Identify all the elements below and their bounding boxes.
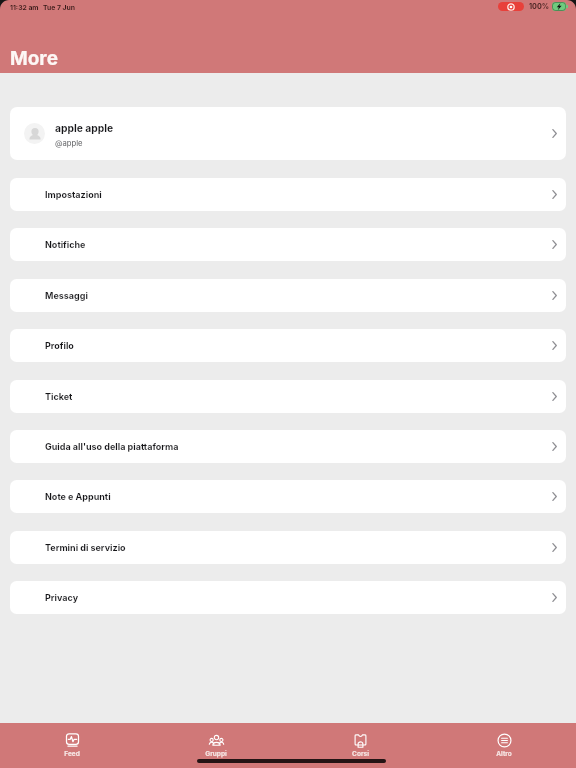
- staticText: Profilo: [45, 340, 74, 351]
- staticText: Gruppi: [205, 750, 227, 758]
- button[interactable]: Privacy: [10, 581, 566, 614]
- staticText: Feed: [64, 750, 80, 758]
- button[interactable]: Note e Appunti: [10, 480, 566, 513]
- button[interactable]: Profilo: [10, 329, 566, 362]
- button[interactable]: Termini di servizio: [10, 531, 566, 564]
- button[interactable]: Messaggi: [10, 279, 566, 312]
- staticText: 11:32 am: [10, 3, 39, 11]
- staticText: Notifiche: [45, 239, 86, 250]
- staticText: Impostazioni: [45, 189, 102, 200]
- staticText: Termini di servizio: [45, 542, 126, 553]
- staticText: Altro: [496, 750, 512, 758]
- button[interactable]: Feed: [0, 723, 144, 768]
- staticText: Privacy: [45, 592, 79, 603]
- button[interactable]: Guida all'uso della piattaforma: [10, 430, 566, 463]
- staticText: Tue 7 Jun: [43, 3, 75, 11]
- button[interactable]: Gruppi: [144, 723, 288, 768]
- staticText: Guida all'uso della piattaforma: [45, 441, 179, 452]
- staticText: 100%: [529, 2, 550, 11]
- button[interactable]: Ticket: [10, 380, 566, 413]
- button[interactable]: Corsi: [288, 723, 432, 768]
- staticText: apple apple: [55, 122, 114, 134]
- staticText: Corsi: [352, 750, 369, 758]
- staticText: Messaggi: [45, 290, 88, 301]
- staticText: More: [10, 47, 58, 70]
- staticText: @apple: [55, 139, 83, 148]
- staticText: Note e Appunti: [45, 491, 111, 502]
- button[interactable]: Altro: [432, 723, 576, 768]
- button[interactable]: Impostazioni: [10, 178, 566, 211]
- staticText: Ticket: [45, 391, 73, 402]
- button[interactable]: apple apple: [10, 107, 566, 160]
- button[interactable]: Notifiche: [10, 228, 566, 261]
